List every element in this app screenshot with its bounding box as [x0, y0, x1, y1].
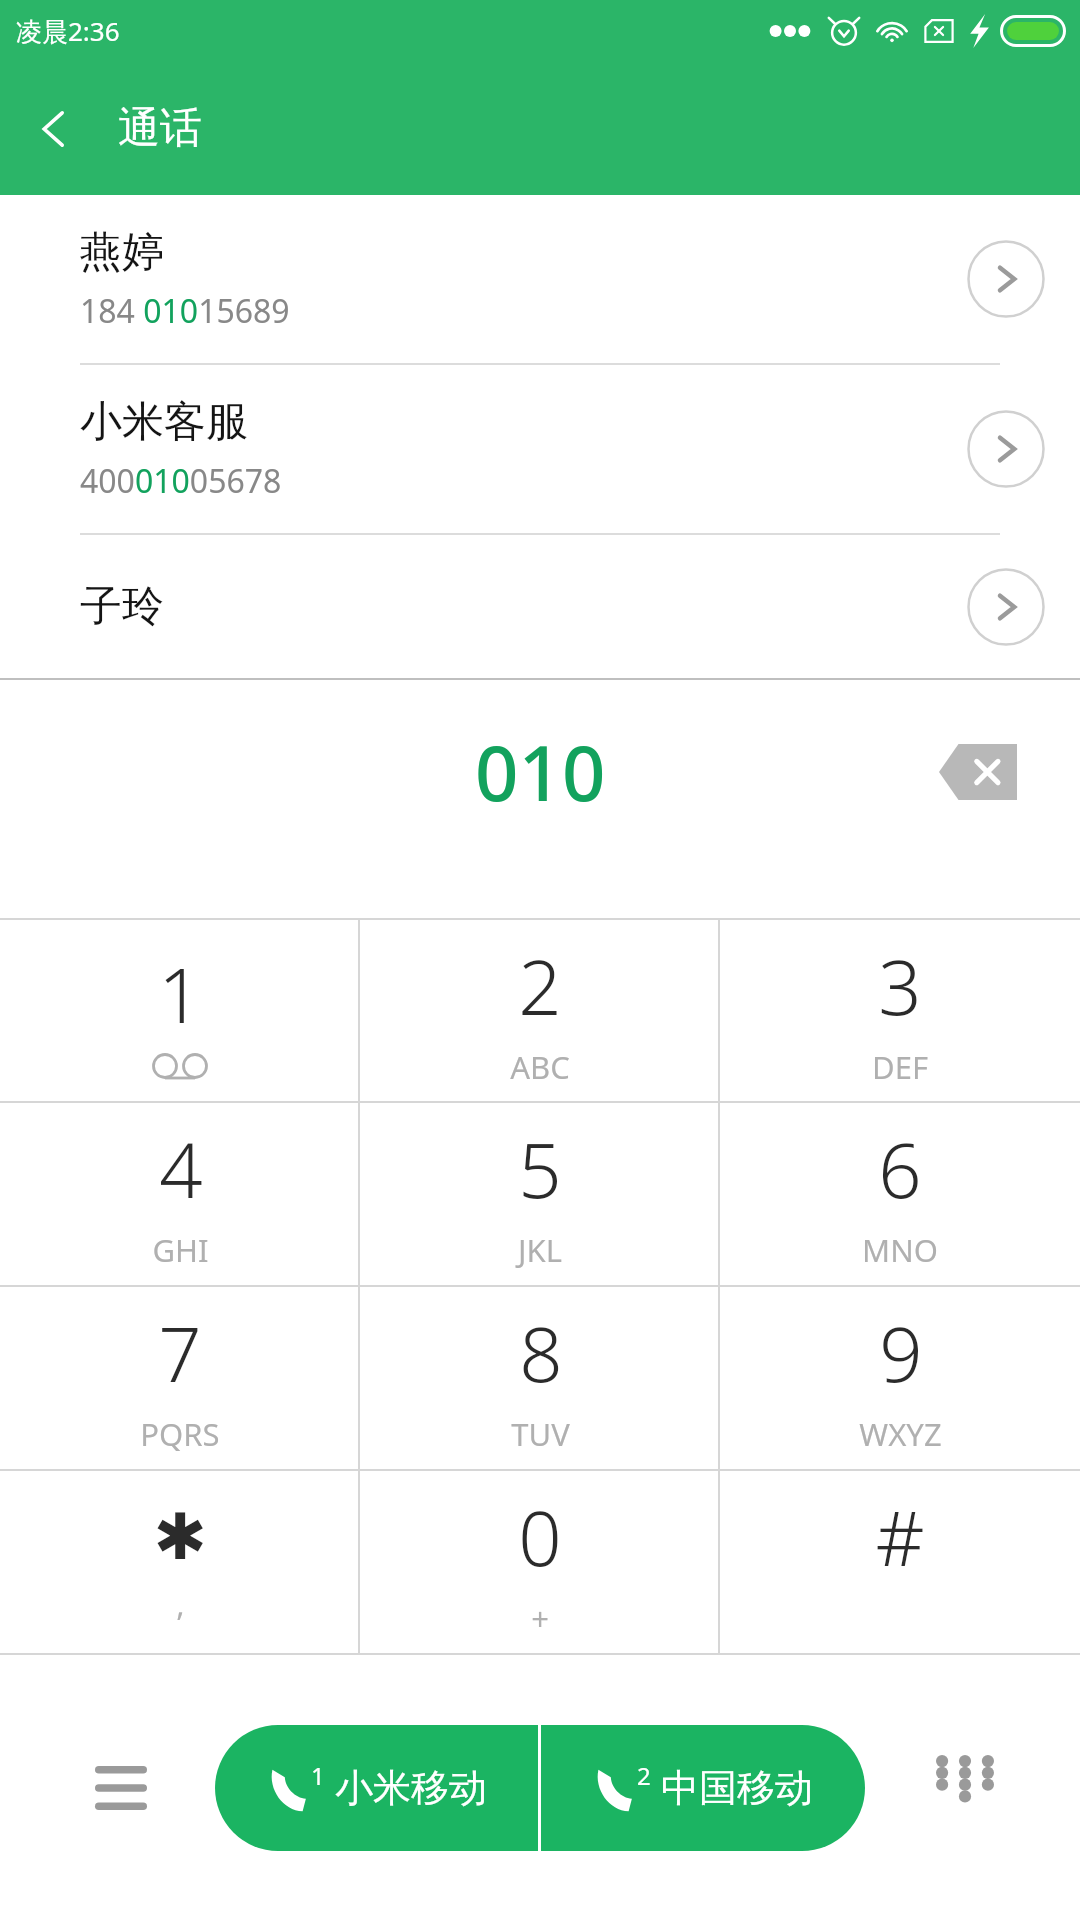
- button[interactable]: 2: [360, 920, 720, 1101]
- button[interactable]: #: [720, 1471, 1080, 1653]
- staticText: 燕婷: [80, 226, 164, 279]
- staticText: 2: [637, 1759, 651, 1792]
- staticText: 1: [311, 1759, 325, 1792]
- staticText: 小米移动: [335, 1764, 487, 1812]
- staticText: ABC: [510, 1046, 570, 1088]
- staticText: 中国移动: [661, 1764, 813, 1812]
- staticText: 010: [475, 720, 606, 824]
- button[interactable]: 燕婷: [0, 195, 1080, 363]
- button[interactable]: Dialpad: [910, 1733, 1020, 1843]
- button[interactable]: 9: [720, 1287, 1080, 1469]
- staticText: 5: [518, 1117, 562, 1221]
- staticText: TUV: [511, 1413, 570, 1455]
- staticText: 4: [159, 1117, 203, 1221]
- staticText: PQRS: [140, 1413, 220, 1455]
- staticText: WXYZ: [859, 1413, 942, 1455]
- button[interactable]: 子玲: [0, 535, 1080, 678]
- button[interactable]: Backspace: [922, 716, 1034, 828]
- button[interactable]: 6: [720, 1103, 1080, 1285]
- button[interactable]: 4: [0, 1103, 360, 1285]
- button[interactable]: 2: [541, 1725, 865, 1851]
- button[interactable]: 5: [360, 1103, 720, 1285]
- button[interactable]: Contact details: [956, 229, 1056, 329]
- staticText: ,: [176, 1583, 185, 1625]
- staticText: GHI: [152, 1229, 209, 1271]
- staticText: 8: [519, 1301, 563, 1405]
- staticText: 6: [878, 1117, 922, 1221]
- staticText: #: [875, 1485, 925, 1589]
- staticText: 7: [158, 1301, 202, 1405]
- button[interactable]: 0: [360, 1471, 720, 1653]
- staticText: 1: [158, 942, 202, 1046]
- staticText: 子玲: [80, 580, 164, 633]
- button[interactable]: 1: [0, 920, 360, 1101]
- button[interactable]: 8: [360, 1287, 720, 1469]
- staticText: 3: [878, 934, 922, 1038]
- button[interactable]: 3: [720, 920, 1080, 1101]
- staticText: MNO: [862, 1229, 938, 1271]
- staticText: ✱: [153, 1500, 207, 1575]
- staticText: DEF: [872, 1046, 928, 1088]
- staticText: 184 01015689: [80, 289, 290, 333]
- staticText: JKL: [518, 1229, 562, 1271]
- button[interactable]: Menu: [66, 1733, 176, 1843]
- button[interactable]: 小米客服: [0, 365, 1080, 533]
- button[interactable]: 1: [215, 1725, 538, 1851]
- button[interactable]: 7: [0, 1287, 360, 1469]
- button[interactable]: ✱: [0, 1471, 360, 1653]
- button[interactable]: Contact details: [956, 399, 1056, 499]
- button[interactable]: Back: [0, 74, 110, 184]
- staticText: 通话: [118, 102, 202, 155]
- staticText: 9: [879, 1301, 923, 1405]
- staticText: 40001005678: [80, 459, 282, 503]
- staticText: 0: [518, 1485, 562, 1589]
- staticText: +: [531, 1597, 549, 1639]
- staticText: 2: [518, 934, 562, 1038]
- staticText: 小米客服: [80, 396, 248, 449]
- button[interactable]: Contact details: [956, 557, 1056, 657]
- staticText: 凌晨2:36: [16, 13, 120, 49]
